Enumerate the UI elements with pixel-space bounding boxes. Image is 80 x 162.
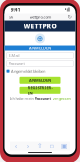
staticText: ⊕ — [36, 34, 43, 43]
staticText: vergessen — [52, 96, 70, 101]
staticText: ANMELDEN — [29, 45, 51, 51]
staticText: Passwort — [8, 61, 24, 66]
staticText: •ıll — [64, 6, 69, 13]
staticText: E-Mail — [8, 53, 19, 58]
staticText: Angemeldet bleiben — [11, 68, 45, 74]
button[interactable]: Share — [34, 142, 46, 150]
staticText: ▫ — [49, 142, 54, 150]
staticText: ‹ — [15, 142, 17, 150]
staticText: 9:41 — [10, 6, 20, 13]
staticText: › — [27, 142, 29, 150]
staticText: wettpro.com — [29, 14, 51, 20]
staticText: WETTPRO — [23, 22, 56, 30]
staticText: ▣ — [61, 142, 67, 150]
staticText: REGISTRIEREN — [27, 85, 52, 96]
button[interactable]: Tabs — [58, 142, 70, 150]
staticText: ANMELDEN — [29, 78, 51, 83]
button[interactable]: Back — [10, 142, 22, 150]
button[interactable]: ANMELDEN — [19, 77, 60, 84]
button[interactable]: Bookmarks — [46, 142, 58, 150]
staticText: Passwort — [34, 96, 51, 101]
staticText: aA — [8, 14, 13, 20]
button[interactable]: REGISTRIEREN — [19, 87, 60, 94]
staticText: Ich habe mein — [9, 96, 33, 101]
staticText: ⇧ — [37, 142, 43, 150]
button[interactable]: Forward — [22, 142, 34, 150]
staticText: ↻ — [67, 14, 71, 20]
